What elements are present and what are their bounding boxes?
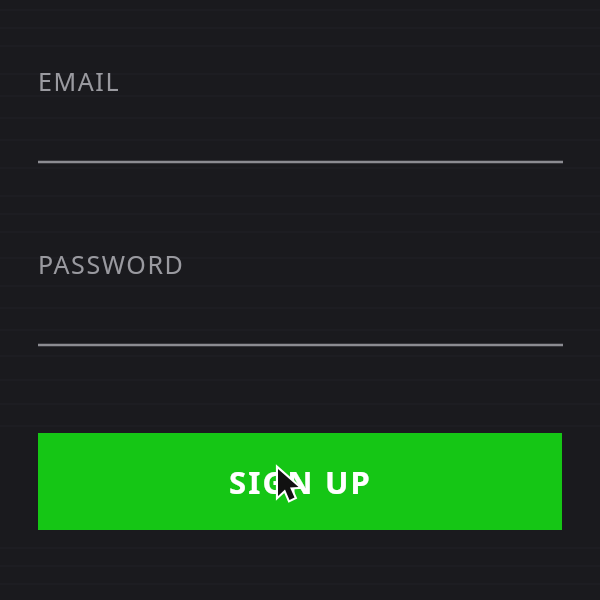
button[interactable]: EMAIL (38, 64, 563, 164)
staticText: EMAIL (38, 64, 121, 98)
button[interactable]: PASSWORD (38, 247, 563, 347)
staticText: SIGN UP (229, 461, 372, 503)
staticText: PASSWORD (38, 247, 185, 281)
button[interactable]: SIGN UP (38, 433, 562, 530)
